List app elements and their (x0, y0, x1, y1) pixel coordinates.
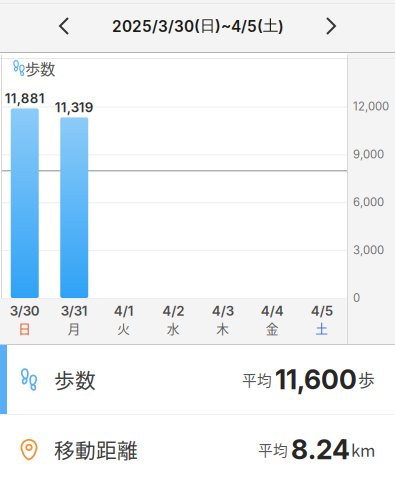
staticText: 金 (266, 319, 279, 337)
staticText: 2025/3/30(日)~4/5(土) (112, 16, 284, 36)
staticText: km (351, 437, 375, 461)
staticText: 歩 (358, 367, 375, 391)
staticText: 平均 (258, 439, 288, 460)
button[interactable]: 移動距離 (0, 415, 395, 480)
staticText: 平均 (242, 369, 272, 390)
staticText: 6,000 (353, 195, 384, 209)
staticText: 歩数 (54, 364, 96, 394)
staticText: 3,000 (353, 243, 384, 257)
staticText: 11,881 (5, 90, 45, 106)
staticText: 3/31 (61, 303, 88, 319)
staticText: 0 (353, 291, 360, 305)
staticText: 日 (18, 319, 31, 337)
button[interactable]: 次の週 (309, 4, 353, 48)
staticText: 9,000 (353, 147, 384, 161)
staticText: 11,319 (55, 99, 94, 115)
staticText: 8.24 (291, 433, 350, 466)
staticText: 11,600 (275, 363, 357, 396)
button[interactable]: 歩数 (0, 345, 395, 414)
staticText: 4/3 (212, 303, 234, 319)
staticText: 木 (216, 319, 229, 337)
staticText: 火 (117, 319, 130, 337)
staticText: 移動距離 (54, 434, 138, 464)
staticText: 月 (68, 319, 81, 337)
staticText: 12,000 (353, 100, 389, 113)
staticText: 4/1 (114, 303, 134, 319)
staticText: 4/4 (261, 303, 284, 319)
staticText: 4/5 (311, 303, 333, 319)
staticText: 土 (315, 319, 328, 337)
button[interactable]: 前の週 (42, 4, 86, 48)
staticText: 歩数 (25, 57, 55, 79)
staticText: 水 (167, 319, 180, 337)
staticText: 4/2 (162, 303, 184, 319)
staticText: 3/30 (10, 303, 40, 319)
